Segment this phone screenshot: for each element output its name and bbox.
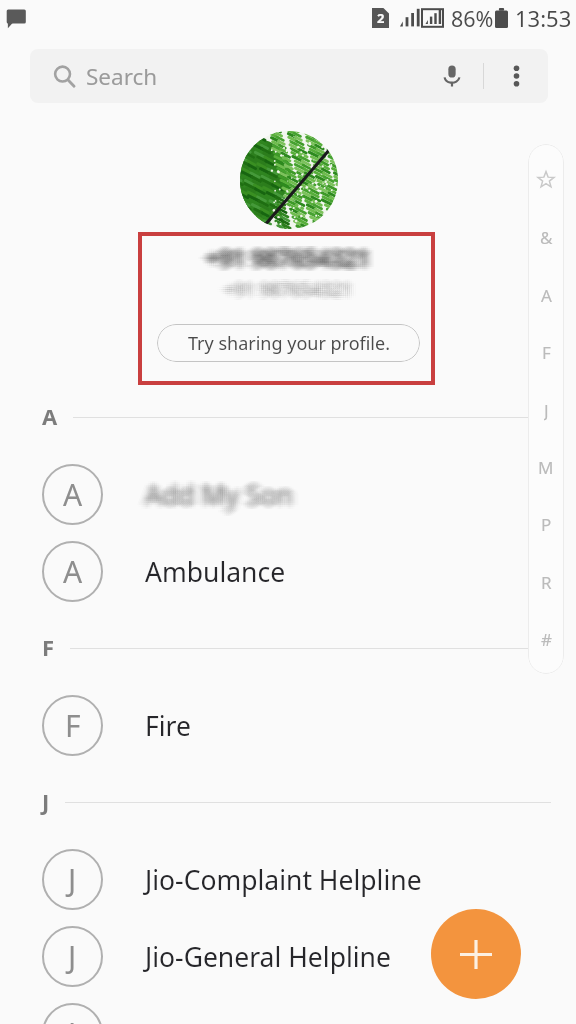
staticText: +91 987654321	[209, 238, 373, 269]
staticText: +91 987654321	[224, 277, 353, 302]
staticText: Add My Son	[153, 479, 301, 515]
staticText: +91 987654321	[226, 281, 355, 306]
staticText: F	[542, 341, 551, 363]
staticText: +91 987654321	[215, 240, 379, 271]
staticText: Add My Son	[149, 473, 297, 509]
staticText: +91 987654321	[220, 279, 349, 304]
staticText: +91 987654321	[211, 242, 375, 273]
staticText: +91 987654321	[226, 275, 355, 300]
staticText: +91 987654321	[224, 273, 353, 298]
button[interactable]: Alphabet index	[528, 144, 564, 674]
button[interactable]: J	[0, 995, 576, 1024]
staticText: J	[68, 936, 77, 977]
staticText: Add My Son	[151, 479, 299, 515]
staticText: F	[42, 632, 55, 662]
staticText: +91 987654321	[207, 240, 371, 271]
staticText: Add My Son	[153, 477, 301, 513]
staticText: +91 987654321	[201, 244, 365, 275]
staticText: Add My Son	[141, 473, 289, 509]
staticText: +91 987654321	[226, 273, 355, 298]
staticText: +91 987654321	[232, 275, 361, 300]
staticText: Add My Son	[145, 477, 293, 513]
staticText: Add My Son	[147, 477, 295, 513]
staticText: +91 987654321	[209, 246, 373, 277]
staticText: Add My Son	[143, 475, 291, 511]
staticText: +91 987654321	[230, 275, 359, 300]
staticText: Add My Son	[145, 481, 293, 517]
staticText: +91 987654321	[220, 275, 349, 300]
staticText: +91 987654321	[211, 240, 375, 271]
staticText: +91 987654321	[199, 242, 363, 273]
staticText: M	[538, 456, 554, 478]
button[interactable]: F	[0, 687, 576, 764]
staticText: +91 987654321	[207, 242, 371, 273]
staticText: J	[68, 859, 77, 900]
staticText: #	[541, 628, 552, 650]
button[interactable]: Add contact	[431, 909, 521, 999]
staticText: &	[540, 226, 553, 248]
staticText: +91 987654321	[207, 244, 371, 275]
button[interactable]: A	[0, 533, 576, 610]
staticText: Add My Son	[137, 477, 285, 513]
staticText: +91 987654321	[209, 244, 373, 275]
staticText: +91 987654321	[226, 279, 355, 304]
staticText: +91 987654321	[205, 246, 369, 277]
staticText: +91 987654321	[203, 238, 367, 269]
staticText: J	[68, 1013, 77, 1024]
staticText: +91 987654321	[218, 275, 347, 300]
staticText: +91 987654321	[228, 279, 357, 304]
staticText: Try sharing your profile.	[188, 331, 390, 356]
staticText: +91 987654321	[211, 238, 375, 269]
staticText: Add My Son	[149, 481, 297, 517]
staticText: Add My Son	[143, 473, 291, 509]
staticText: +91 987654321	[228, 275, 357, 300]
staticText: Add My Son	[147, 479, 295, 515]
staticText: +91 987654321	[209, 240, 373, 271]
staticText: +91 987654321	[218, 279, 347, 304]
staticText: A	[42, 401, 58, 431]
button[interactable]: Try sharing your profile.	[157, 324, 420, 362]
staticText: Add My Son	[141, 475, 289, 511]
staticText: Search	[86, 61, 158, 92]
staticText: +91 987654321	[199, 240, 363, 271]
staticText: Fire	[145, 708, 191, 744]
staticText: +91 987654321	[213, 244, 377, 275]
staticText: 2	[377, 9, 385, 27]
staticText: Add My Son	[145, 477, 293, 513]
staticText: Add My Son	[137, 479, 285, 515]
staticText: +91 987654321	[205, 242, 369, 273]
staticText: +91 987654321	[230, 281, 359, 306]
staticText: +91 987654321	[211, 244, 375, 275]
staticText: +91 987654321	[216, 275, 345, 300]
staticText: +91 987654321	[205, 238, 369, 269]
staticText: +91 987654321	[197, 240, 361, 271]
staticText: +91 987654321	[222, 281, 351, 306]
staticText: A	[541, 284, 552, 306]
button[interactable]: J	[0, 841, 576, 918]
staticText: +91 987654321	[203, 246, 367, 277]
staticText: +91 987654321	[218, 277, 347, 302]
staticText: Add My Son	[151, 477, 299, 513]
button[interactable]: J	[0, 918, 576, 995]
staticText: +91 987654321	[207, 246, 371, 277]
staticText: +91 987654321	[224, 275, 353, 300]
staticText: +91 987654321	[224, 279, 353, 304]
staticText: +91 987654321	[232, 279, 361, 304]
staticText: Add My Son	[141, 481, 289, 517]
staticText: +91 987654321	[224, 281, 353, 306]
staticText: Add My Son	[145, 479, 293, 515]
staticText: Add My Son	[139, 473, 287, 509]
staticText: +91 987654321	[222, 275, 351, 300]
button[interactable]: Search	[30, 49, 548, 103]
staticText: +91 987654321	[222, 279, 351, 304]
staticText: +91 987654321	[230, 277, 359, 302]
staticText: Ambulance	[145, 554, 286, 590]
staticText: +91 987654321	[197, 244, 361, 275]
staticText: +91 987654321	[209, 242, 373, 273]
staticText: +91 987654321	[222, 273, 351, 298]
button[interactable]: A	[0, 456, 576, 533]
staticText: +91 987654321	[226, 277, 355, 302]
staticText: A	[63, 474, 83, 515]
staticText: +91 987654321	[203, 242, 367, 273]
staticText: R	[541, 571, 552, 593]
